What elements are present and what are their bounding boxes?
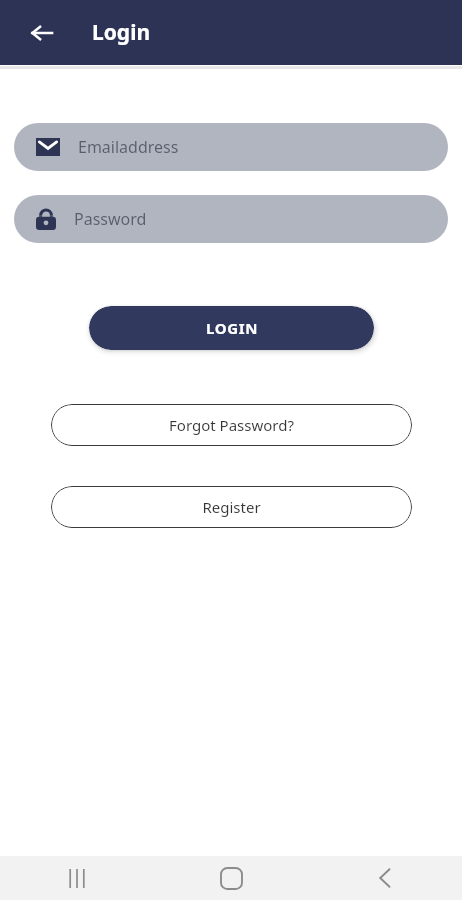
staticText: Register	[202, 497, 261, 517]
staticText: Login	[92, 18, 151, 47]
staticText: Forgot Password?	[169, 415, 294, 435]
button[interactable]: Back	[20, 11, 64, 55]
button[interactable]: Password	[14, 195, 448, 243]
button[interactable]: Emailaddress	[14, 123, 448, 171]
button[interactable]: Recent apps	[0, 856, 154, 900]
button[interactable]: Register	[51, 486, 412, 528]
button[interactable]: Forgot Password?	[51, 404, 412, 446]
button[interactable]: Back	[308, 856, 462, 900]
staticText: Emailaddress	[78, 136, 179, 158]
button[interactable]: LOGIN	[89, 306, 374, 350]
staticText: LOGIN	[206, 318, 258, 338]
button[interactable]: Home	[154, 856, 308, 900]
staticText: Password	[74, 208, 147, 230]
